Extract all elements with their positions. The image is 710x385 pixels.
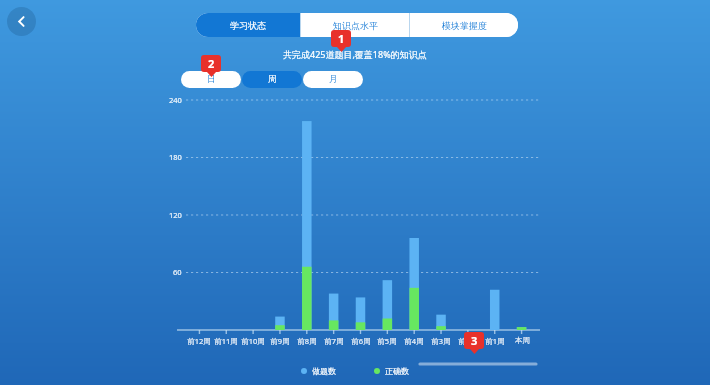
staticText: 共完成425道题目,覆盖18%的知识点 xyxy=(283,48,427,60)
button[interactable]: 模块掌握度 xyxy=(410,13,518,37)
staticText: 120 xyxy=(169,210,182,220)
staticText: 前4周 xyxy=(404,336,424,346)
staticText: 周 xyxy=(268,74,277,85)
staticText: 180 xyxy=(169,152,182,162)
staticText: 前8周 xyxy=(297,336,317,346)
button[interactable]: 知识点水平 xyxy=(301,13,409,37)
staticText: 3 xyxy=(471,333,478,348)
staticText: 做题数 xyxy=(312,366,336,376)
staticText: 前7周 xyxy=(324,336,344,346)
button[interactable]: 学习状态 xyxy=(196,13,300,37)
staticText: 2 xyxy=(208,56,215,71)
button[interactable]: 月 xyxy=(303,71,363,88)
button[interactable]: 周 xyxy=(242,71,302,88)
staticText: 前1周 xyxy=(485,336,505,346)
staticText: 前12周 xyxy=(187,336,211,346)
staticText: 本周 xyxy=(515,336,530,345)
staticText: 前3周 xyxy=(431,336,451,346)
staticText: 月 xyxy=(329,74,338,85)
staticText: 学习状态 xyxy=(230,20,266,31)
staticText: 日 xyxy=(207,74,216,85)
staticText: 1 xyxy=(338,31,345,46)
button[interactable]: Back xyxy=(7,7,36,36)
button[interactable]: 日 xyxy=(181,71,241,88)
staticText: 60 xyxy=(173,267,182,277)
staticText: 模块掌握度 xyxy=(442,20,487,31)
button[interactable]: 正确数 xyxy=(374,366,409,376)
staticText: 知识点水平 xyxy=(333,20,378,31)
staticText: 240 xyxy=(169,95,182,105)
staticText: 前6周 xyxy=(351,336,371,346)
staticText: 前2周 xyxy=(458,336,478,346)
staticText: 前11周 xyxy=(214,336,238,346)
staticText: 前10周 xyxy=(241,336,265,346)
staticText: 前9周 xyxy=(270,336,290,346)
button[interactable]: 做题数 xyxy=(301,366,336,376)
staticText: 正确数 xyxy=(385,366,409,376)
staticText: 前5周 xyxy=(377,336,397,346)
